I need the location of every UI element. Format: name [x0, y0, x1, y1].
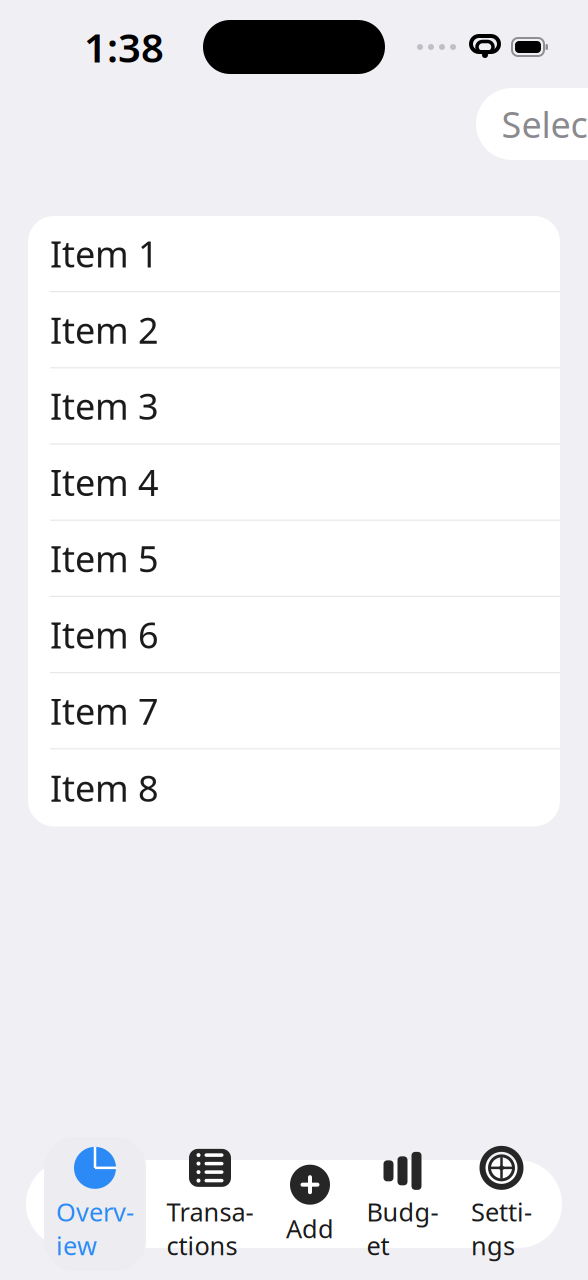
button[interactable]: Item 2: [28, 292, 560, 368]
button[interactable]: Select: [476, 88, 588, 160]
staticText: Overview: [56, 1195, 134, 1262]
staticText: Item 3: [50, 382, 159, 430]
staticText: Transactions: [166, 1195, 253, 1262]
button[interactable]: Transactions: [154, 1137, 265, 1271]
button[interactable]: Item 8: [28, 749, 560, 826]
button[interactable]: Item 3: [28, 368, 560, 445]
button[interactable]: Item 6: [28, 597, 560, 673]
staticText: Item 7: [50, 687, 159, 735]
button[interactable]: Item 1: [28, 216, 560, 292]
button[interactable]: Item 5: [28, 521, 560, 597]
button[interactable]: Item 4: [28, 445, 560, 521]
staticText: Select: [501, 100, 588, 148]
staticText: Add: [286, 1212, 334, 1245]
button[interactable]: Item 7: [28, 673, 560, 749]
button[interactable]: Overview: [44, 1137, 146, 1271]
staticText: Item 1: [50, 230, 159, 277]
button[interactable]: Settings: [459, 1137, 544, 1271]
staticText: Item 6: [50, 611, 159, 658]
staticText: Item 2: [50, 306, 159, 354]
button[interactable]: Add: [274, 1154, 346, 1254]
staticText: Item 8: [50, 764, 159, 812]
staticText: Item 5: [50, 534, 159, 582]
staticText: 1:38: [84, 20, 164, 73]
staticText: Settings: [471, 1195, 532, 1262]
staticText: Budget: [366, 1195, 438, 1262]
button[interactable]: Budget: [354, 1137, 450, 1271]
staticText: Item 4: [50, 458, 159, 506]
